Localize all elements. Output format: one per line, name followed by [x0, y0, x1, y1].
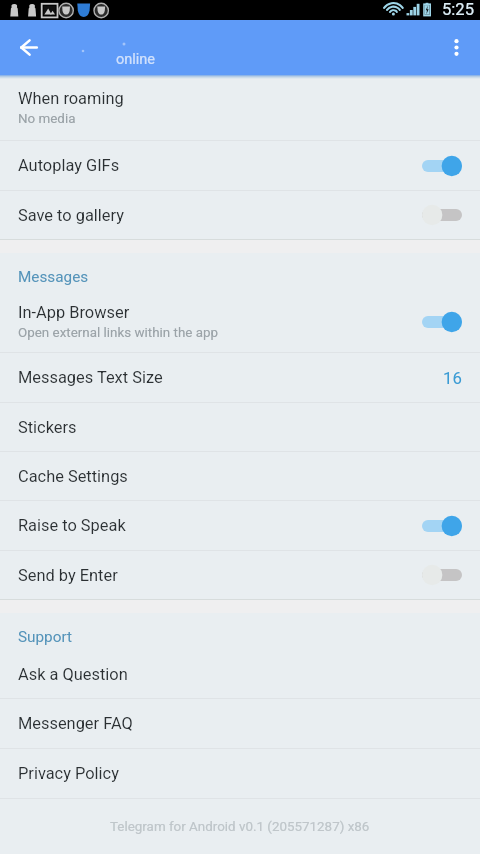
staticText: When roaming — [18, 89, 124, 108]
staticText: Telegram for Android v0.1 (205571287) x8… — [110, 819, 370, 835]
button[interactable]: Raise to Speak — [0, 501, 480, 550]
button[interactable]: Messages Text Size — [0, 353, 480, 402]
button[interactable]: Ask a Question — [0, 651, 480, 698]
staticText: Cache Settings — [18, 467, 128, 486]
staticText: 5:25 — [442, 0, 474, 19]
staticText: Support — [18, 628, 72, 646]
button[interactable]: Send by Enter — [0, 551, 480, 599]
button[interactable]: In-App Browser — [0, 292, 480, 352]
staticText: In-App Browser — [18, 303, 130, 322]
staticText: online — [116, 51, 156, 68]
staticText: Autoplay GIFs — [18, 156, 120, 175]
button[interactable]: Stickers — [0, 403, 480, 451]
staticText: Stickers — [18, 418, 77, 437]
button[interactable]: Cache Settings — [0, 452, 480, 500]
button[interactable]: More options — [432, 24, 480, 72]
staticText: Messages — [18, 268, 89, 286]
staticText: Raise to Speak — [18, 516, 126, 535]
button[interactable]: When roaming — [0, 75, 480, 140]
button[interactable]: Save to gallery — [0, 191, 480, 239]
button[interactable]: Privacy Policy — [0, 749, 480, 798]
staticText: No media — [18, 111, 76, 127]
staticText: 16 — [443, 368, 462, 388]
button[interactable]: Back — [2, 21, 55, 74]
staticText: Messages Text Size — [18, 368, 163, 387]
button[interactable]: Autoplay GIFs — [0, 141, 480, 190]
button[interactable]: Messenger FAQ — [0, 699, 480, 748]
staticText: Open external links within the app — [18, 325, 219, 341]
staticText: Send by Enter — [18, 566, 118, 585]
staticText: Save to gallery — [18, 206, 124, 225]
staticText: Ask a Question — [18, 665, 128, 684]
staticText: Messenger FAQ — [18, 714, 133, 733]
staticText: Privacy Policy — [18, 764, 119, 783]
